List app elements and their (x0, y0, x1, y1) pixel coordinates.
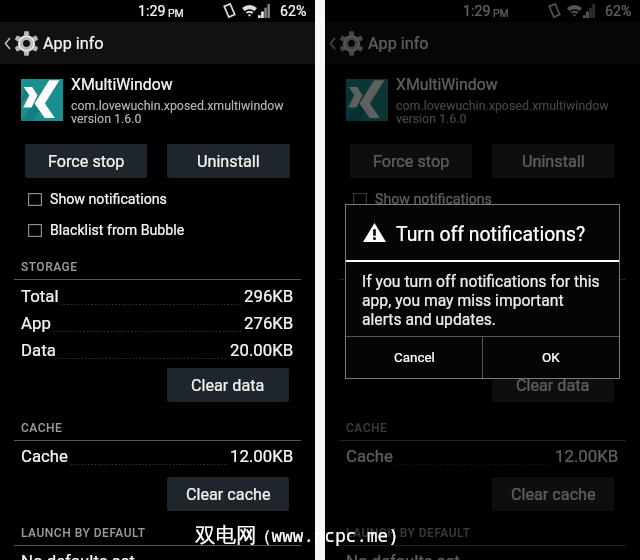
staticText: STORAGE (346, 260, 403, 274)
staticText: 296KB (569, 286, 619, 306)
staticText: Blacklist from Bubble (375, 222, 510, 239)
button[interactable]: Navigate up (325, 22, 368, 64)
button[interactable]: Clear cache (167, 477, 289, 511)
staticText: Cache (21, 446, 69, 466)
button[interactable]: Force stop (25, 144, 147, 178)
staticText: Clear cache (511, 485, 596, 504)
staticText: 1:29 (138, 3, 166, 20)
staticText: version 1.6.0 (396, 111, 467, 126)
staticText: Cancel (394, 350, 435, 366)
staticText: 12.00KB (555, 446, 619, 466)
staticText: 20.00KB (230, 340, 294, 360)
button[interactable]: Data (21, 340, 294, 360)
button[interactable]: Navigate up (0, 22, 43, 64)
staticText: PM (493, 7, 509, 19)
staticText: Clear data (191, 376, 265, 395)
staticText: Cache (346, 446, 394, 466)
staticText: 296KB (244, 286, 294, 306)
button[interactable]: Force stop (350, 144, 472, 178)
button[interactable]: App (346, 313, 619, 333)
staticText: Uninstall (197, 152, 260, 171)
button[interactable]: Uninstall (167, 144, 290, 178)
staticText: version 1.6.0 (71, 111, 142, 126)
button[interactable]: OK (483, 337, 619, 378)
button[interactable]: Show notifications (325, 185, 640, 213)
button[interactable]: Total (346, 286, 619, 306)
staticText: App (346, 313, 376, 333)
staticText: 62% (605, 3, 632, 20)
staticText: 20.00KB (555, 340, 619, 360)
staticText: Data (21, 340, 56, 360)
button[interactable]: Total (21, 286, 294, 306)
button[interactable]: Cancel (346, 337, 482, 378)
staticText: Blacklist from Bubble (50, 222, 185, 239)
button[interactable]: Clear cache (492, 477, 614, 511)
button[interactable]: Show notifications (0, 185, 315, 213)
staticText: STORAGE (21, 260, 78, 274)
staticText: 双电网 (195, 522, 257, 548)
staticText: LAUNCH BY DEFAULT (346, 526, 471, 540)
staticText: 276KB (244, 313, 294, 333)
staticText: com.lovewuchin.xposed.xmultiwindow (71, 98, 284, 113)
button[interactable]: App (21, 313, 294, 333)
staticText: OK (542, 350, 560, 366)
button[interactable]: Data (346, 340, 619, 360)
button[interactable]: Clear data (492, 368, 614, 402)
staticText: If you turn off notifications for this a… (362, 272, 622, 329)
staticText: Force stop (48, 152, 125, 171)
staticText: App info (43, 34, 104, 53)
button[interactable]: Blacklist from Bubble (325, 216, 640, 244)
staticText: （www.pcpc.me) (254, 523, 399, 547)
staticText: PM (168, 7, 184, 19)
button[interactable]: Cache (346, 446, 619, 466)
staticText: CACHE (346, 421, 388, 435)
staticText: CACHE (21, 421, 63, 435)
staticText: XMultiWindow (396, 75, 498, 94)
staticText: 1:29 (463, 3, 491, 20)
staticText: No defaults set (21, 551, 135, 560)
staticText: XMultiWindow (71, 75, 173, 94)
staticText: Show notifications (375, 191, 492, 208)
staticText: com.lovewuchin.xposed.xmultiwindow (396, 98, 609, 113)
staticText: Clear cache (186, 485, 271, 504)
button[interactable]: Blacklist from Bubble (0, 216, 315, 244)
staticText: LAUNCH BY DEFAULT (21, 526, 146, 540)
staticText: App (21, 313, 51, 333)
staticText: App info (368, 34, 429, 53)
staticText: Show notifications (50, 191, 167, 208)
staticText: Clear data (516, 376, 590, 395)
button[interactable]: Cache (21, 446, 294, 466)
staticText: Force stop (373, 152, 450, 171)
button[interactable]: Clear data (167, 368, 289, 402)
staticText: Uninstall (522, 152, 585, 171)
staticText: Total (21, 286, 59, 306)
staticText: No defaults set (346, 551, 460, 560)
staticText: 62% (280, 3, 307, 20)
staticText: Turn off notifications? (396, 223, 586, 246)
staticText: Total (346, 286, 384, 306)
staticText: 12.00KB (230, 446, 294, 466)
button[interactable]: Uninstall (492, 144, 615, 178)
